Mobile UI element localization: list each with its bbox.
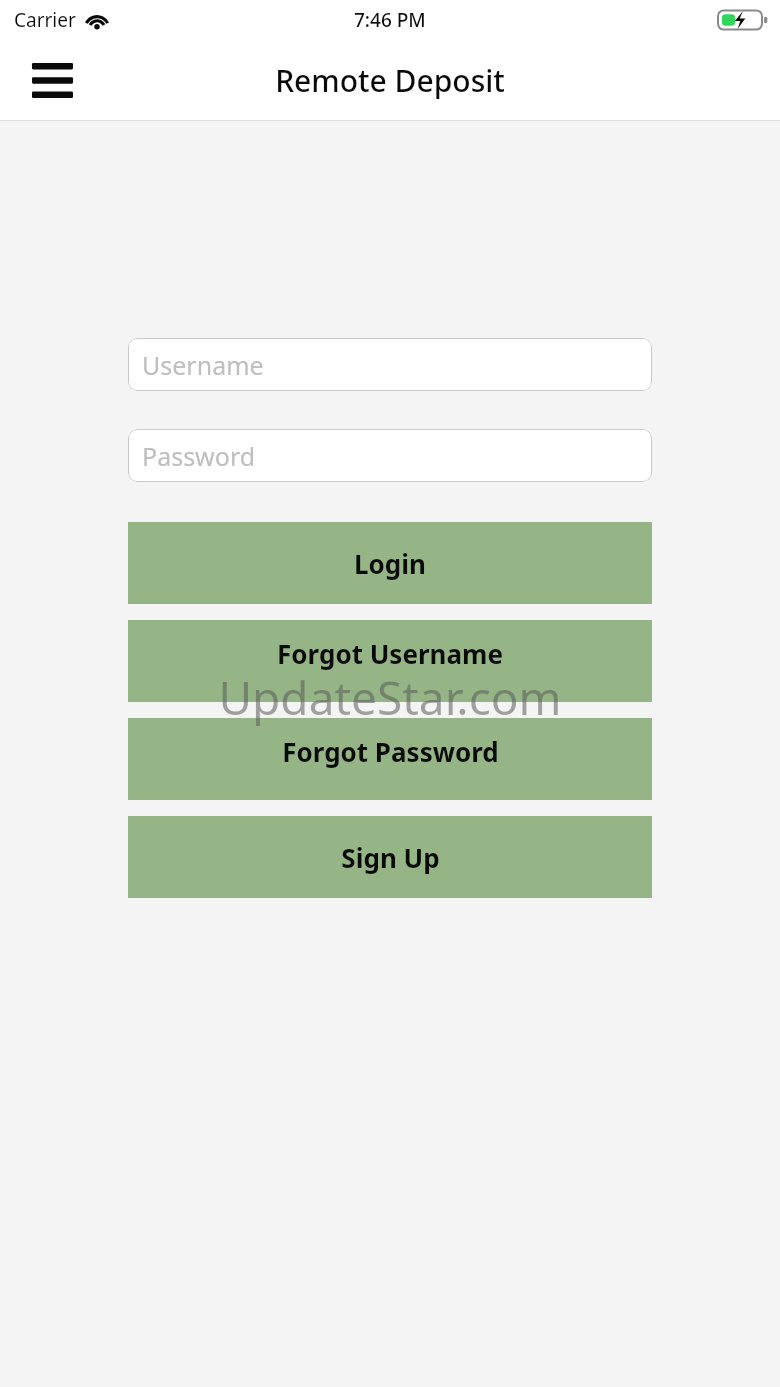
staticText: Sign Up — [341, 840, 440, 875]
button[interactable]: Open navigation menu — [26, 58, 78, 102]
button[interactable]: Username — [128, 338, 652, 391]
staticText: Carrier — [14, 7, 76, 33]
staticText: Remote Deposit — [275, 60, 505, 101]
staticText: Forgot Username — [277, 636, 503, 671]
button[interactable]: Forgot Password — [128, 718, 652, 800]
staticText: Forgot Password — [282, 734, 499, 769]
staticText: 7:46 PM — [354, 7, 426, 33]
staticText: Username — [142, 348, 264, 382]
staticText: UpdateStar.com — [218, 666, 562, 729]
button[interactable]: Login — [128, 522, 652, 604]
button[interactable]: Forgot Username — [128, 620, 652, 702]
staticText: Login — [354, 546, 426, 581]
staticText: Password — [142, 439, 256, 473]
button[interactable]: Sign Up — [128, 816, 652, 898]
button[interactable]: Password — [128, 429, 652, 482]
